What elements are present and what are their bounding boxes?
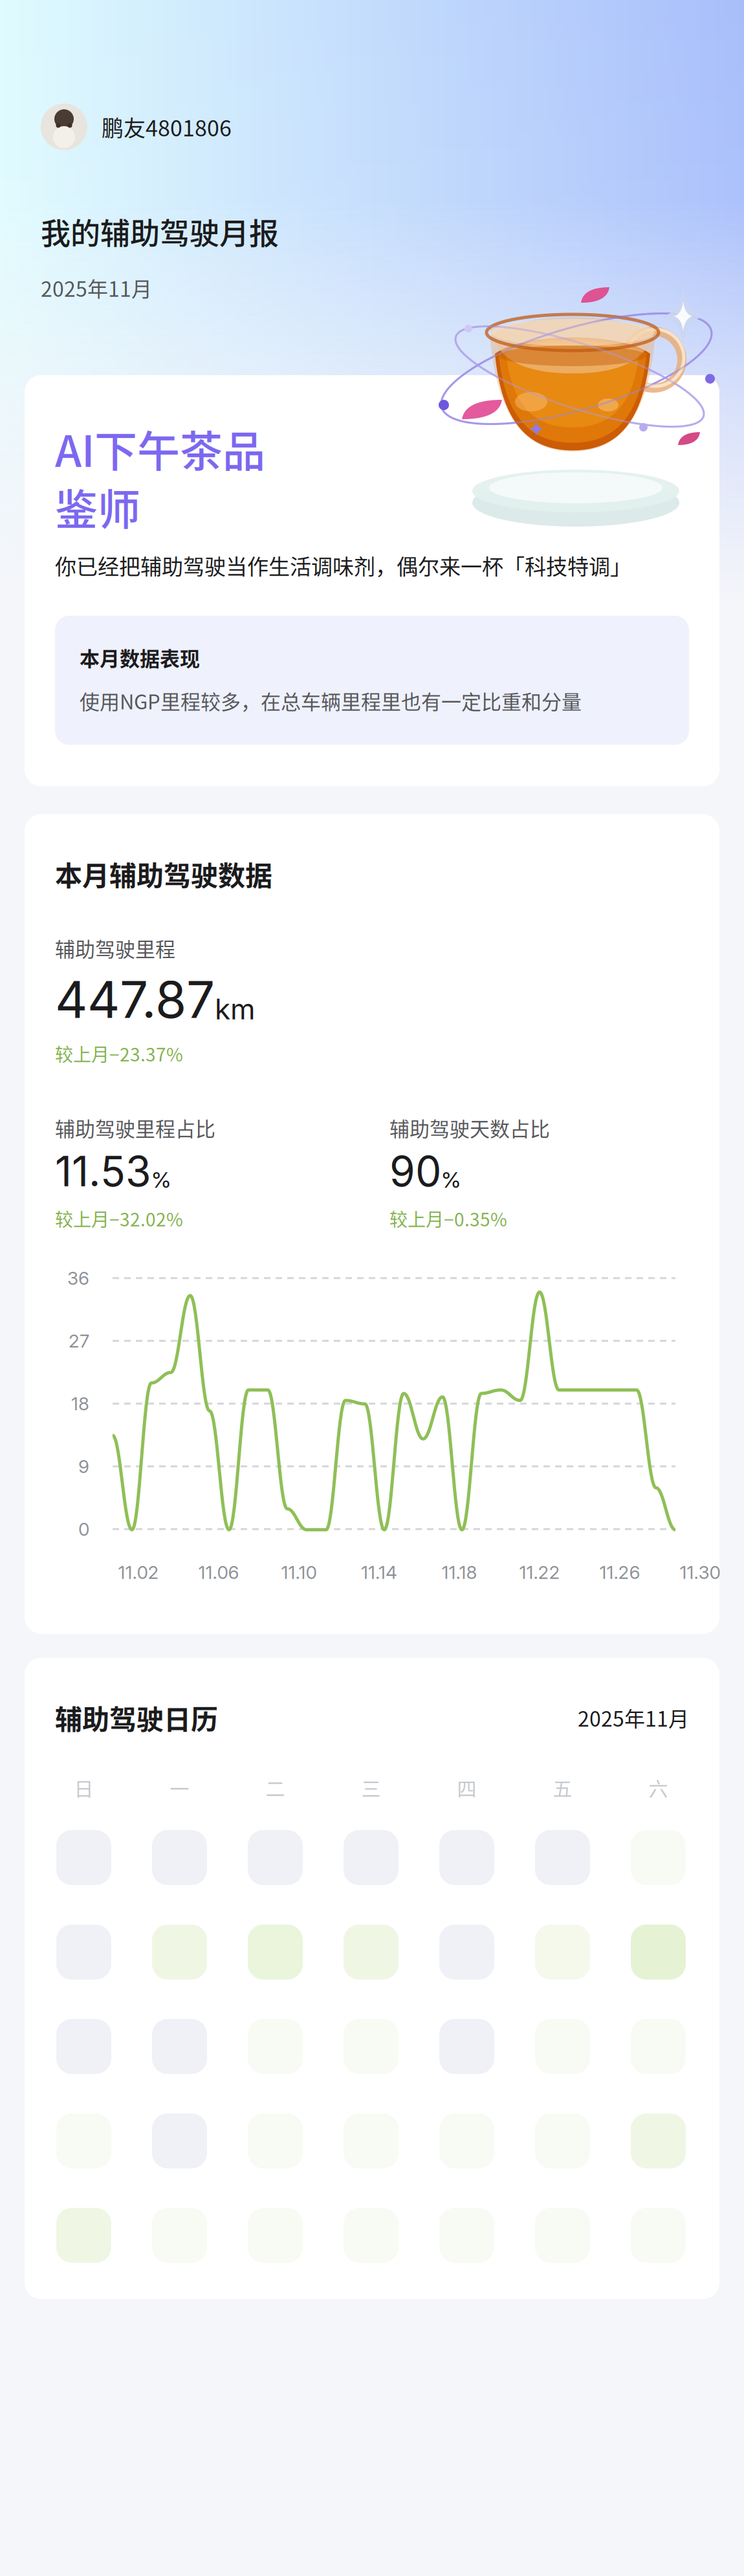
staticText: 2025年11月 — [578, 1703, 689, 1733]
staticText: 2025年11月 — [41, 273, 152, 303]
staticText: 辅助驾驶里程占比 — [55, 1113, 215, 1142]
staticText: 447.87 — [55, 969, 215, 1030]
staticText: 本月辅助驾驶数据 — [55, 854, 272, 894]
staticText: 我的辅助驾驶月报 — [41, 210, 279, 253]
staticText: 六 — [649, 1774, 668, 1802]
staticText: 使用NGP里程较多，在总车辆里程里也有一定比重和分量 — [80, 686, 582, 715]
staticText: 11.30 — [680, 1561, 720, 1583]
staticText: 11.02 — [118, 1561, 159, 1583]
staticText: 五 — [553, 1774, 572, 1802]
staticText: 11.18 — [442, 1561, 477, 1583]
staticText: km — [215, 992, 256, 1026]
staticText: 一 — [170, 1774, 189, 1802]
staticText: 鹏友4801806 — [102, 111, 232, 143]
button[interactable]: 鹏友4801806 — [0, 102, 744, 151]
staticText: 27 — [69, 1330, 89, 1352]
staticText: % — [441, 1166, 461, 1193]
staticText: 11.06 — [198, 1561, 239, 1583]
staticText: 18 — [71, 1393, 89, 1415]
staticText: 本月数据表现 — [80, 643, 200, 672]
staticText: 辅助驾驶天数占比 — [389, 1113, 550, 1142]
staticText: 11.10 — [281, 1561, 317, 1583]
staticText: 11.53 — [55, 1146, 151, 1196]
staticText: 较上月−32.02% — [55, 1205, 183, 1232]
staticText: 11.14 — [361, 1561, 397, 1583]
staticText: 9 — [78, 1455, 89, 1477]
staticText: 11.26 — [599, 1561, 640, 1583]
staticText: 11.22 — [519, 1561, 560, 1583]
staticText: % — [151, 1166, 171, 1193]
staticText: 0 — [78, 1518, 89, 1540]
staticText: 较上月−23.37% — [55, 1040, 183, 1067]
staticText: 日 — [74, 1774, 93, 1802]
staticText: 鉴师 — [55, 476, 140, 537]
staticText: 36 — [67, 1267, 89, 1289]
staticText: 三 — [361, 1774, 381, 1802]
staticText: 辅助驾驶里程 — [55, 934, 175, 963]
staticText: 二 — [266, 1774, 285, 1802]
staticText: 90 — [389, 1146, 441, 1196]
staticText: 辅助驾驶日历 — [55, 1698, 218, 1737]
staticText: 较上月−0.35% — [389, 1205, 507, 1232]
staticText: 四 — [457, 1774, 476, 1802]
staticText: 你已经把辅助驾驶当作生活调味剂，偶尔来一杯「科技特调」 — [55, 550, 631, 581]
staticText: AI下午茶品 — [55, 417, 265, 479]
